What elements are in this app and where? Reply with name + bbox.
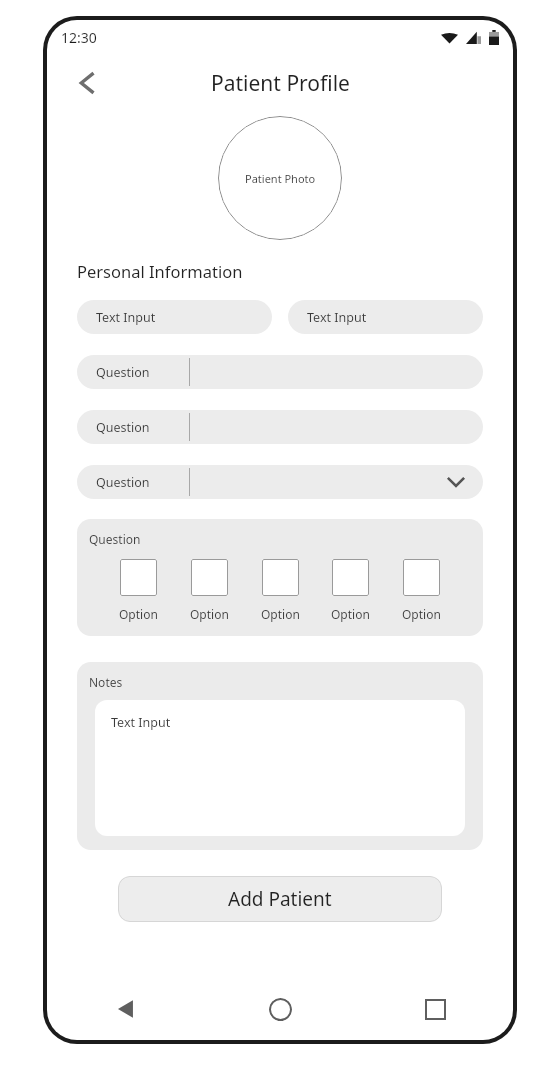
- button[interactable]: Back: [47, 978, 203, 1040]
- staticText: Patient Profile: [211, 69, 350, 98]
- staticText: Notes: [89, 674, 123, 690]
- staticText: Question: [96, 419, 150, 436]
- staticText: 12:30: [61, 28, 97, 47]
- button[interactable]: Text Input: [77, 300, 272, 334]
- button[interactable]: Home: [203, 978, 358, 1040]
- button[interactable]: Question: [77, 465, 483, 499]
- button[interactable]: Text Input: [95, 700, 465, 836]
- staticText: Option: [402, 606, 441, 622]
- button[interactable]: Option: [188, 559, 231, 622]
- button[interactable]: Recent apps: [358, 978, 513, 1040]
- staticText: Option: [119, 606, 158, 622]
- staticText: Personal Information: [77, 260, 243, 282]
- button[interactable]: Text Input: [288, 300, 483, 334]
- button[interactable]: Option: [117, 559, 160, 622]
- button[interactable]: Option: [400, 559, 443, 622]
- button[interactable]: Option: [329, 559, 372, 622]
- staticText: Text Input: [307, 309, 367, 326]
- staticText: Option: [331, 606, 370, 622]
- staticText: Option: [261, 606, 300, 622]
- staticText: Text Input: [111, 714, 171, 731]
- staticText: Option: [190, 606, 229, 622]
- button[interactable]: Option: [259, 559, 302, 622]
- staticText: Question: [96, 474, 150, 491]
- button[interactable]: Patient Photo: [218, 116, 342, 240]
- button[interactable]: Question: [77, 410, 483, 444]
- staticText: Question: [89, 531, 141, 547]
- staticText: Patient Photo: [245, 171, 316, 186]
- button[interactable]: Back: [65, 61, 109, 105]
- button[interactable]: Question: [77, 355, 483, 389]
- staticText: Add Patient: [228, 886, 332, 912]
- staticText: Text Input: [96, 309, 156, 326]
- staticText: Question: [96, 364, 150, 381]
- button[interactable]: Add Patient: [118, 876, 442, 922]
